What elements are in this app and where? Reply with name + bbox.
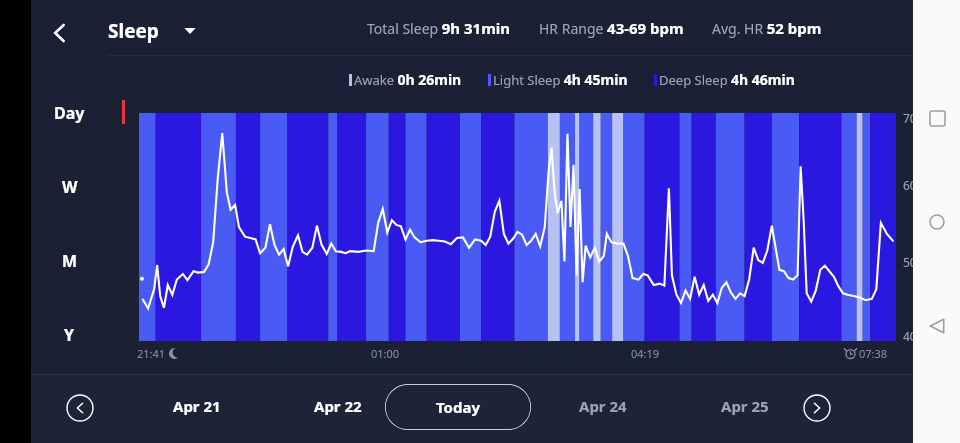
staticText: Total Sleep 9h 31min — [367, 18, 511, 38]
button[interactable]: Sleep — [108, 14, 197, 48]
staticText: HR Range 43-69 bpm — [539, 18, 684, 38]
staticText: W — [62, 176, 78, 198]
staticText: Deep Sleep 4h 46min — [659, 70, 795, 89]
staticText: Y — [64, 324, 75, 346]
button[interactable]: Next — [796, 387, 838, 429]
staticText: Sleep — [108, 18, 159, 44]
button[interactable]: M — [31, 244, 108, 278]
button[interactable]: Y — [31, 318, 108, 352]
button[interactable]: Today — [385, 384, 531, 430]
staticText: Avg. HR 52 bpm — [712, 18, 822, 38]
button[interactable]: Back — [39, 12, 81, 54]
button[interactable]: Home — [914, 199, 960, 245]
button[interactable]: Apr 25 — [721, 396, 769, 416]
staticText: 40 — [903, 328, 917, 344]
staticText: Apr 24 — [579, 396, 627, 416]
staticText: 50 — [903, 254, 917, 270]
button[interactable]: Apr 24 — [579, 396, 627, 416]
staticText: Apr 25 — [721, 396, 769, 416]
button[interactable]: Previous — [59, 387, 101, 429]
staticText: Today — [436, 397, 481, 417]
staticText: Apr 22 — [314, 396, 362, 416]
button[interactable]: Back — [914, 303, 960, 349]
staticText: 21:41 — [137, 346, 166, 361]
button[interactable]: Apr 21 — [173, 396, 221, 416]
staticText: Awake 0h 26min — [354, 70, 462, 89]
staticText: Apr 21 — [173, 396, 221, 416]
staticText: 01:00 — [371, 346, 400, 361]
button[interactable]: Apr 22 — [314, 396, 362, 416]
staticText: 07:38 — [859, 346, 888, 361]
staticText: M — [62, 250, 78, 272]
button[interactable]: W — [31, 170, 108, 204]
button[interactable]: Recent apps — [914, 95, 960, 141]
staticText: 04:19 — [631, 346, 660, 361]
staticText: Day — [54, 102, 85, 124]
staticText: 60 — [903, 177, 917, 193]
staticText: 70 — [903, 110, 917, 126]
button[interactable]: Day — [31, 96, 108, 130]
staticText: Light Sleep 4h 45min — [493, 70, 628, 89]
